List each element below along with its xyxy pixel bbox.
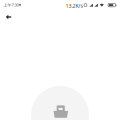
staticText: 上午7:30 [3, 2, 18, 8]
button[interactable]: Back [0, 9, 16, 25]
staticText: 13.2K/s [65, 2, 83, 9]
